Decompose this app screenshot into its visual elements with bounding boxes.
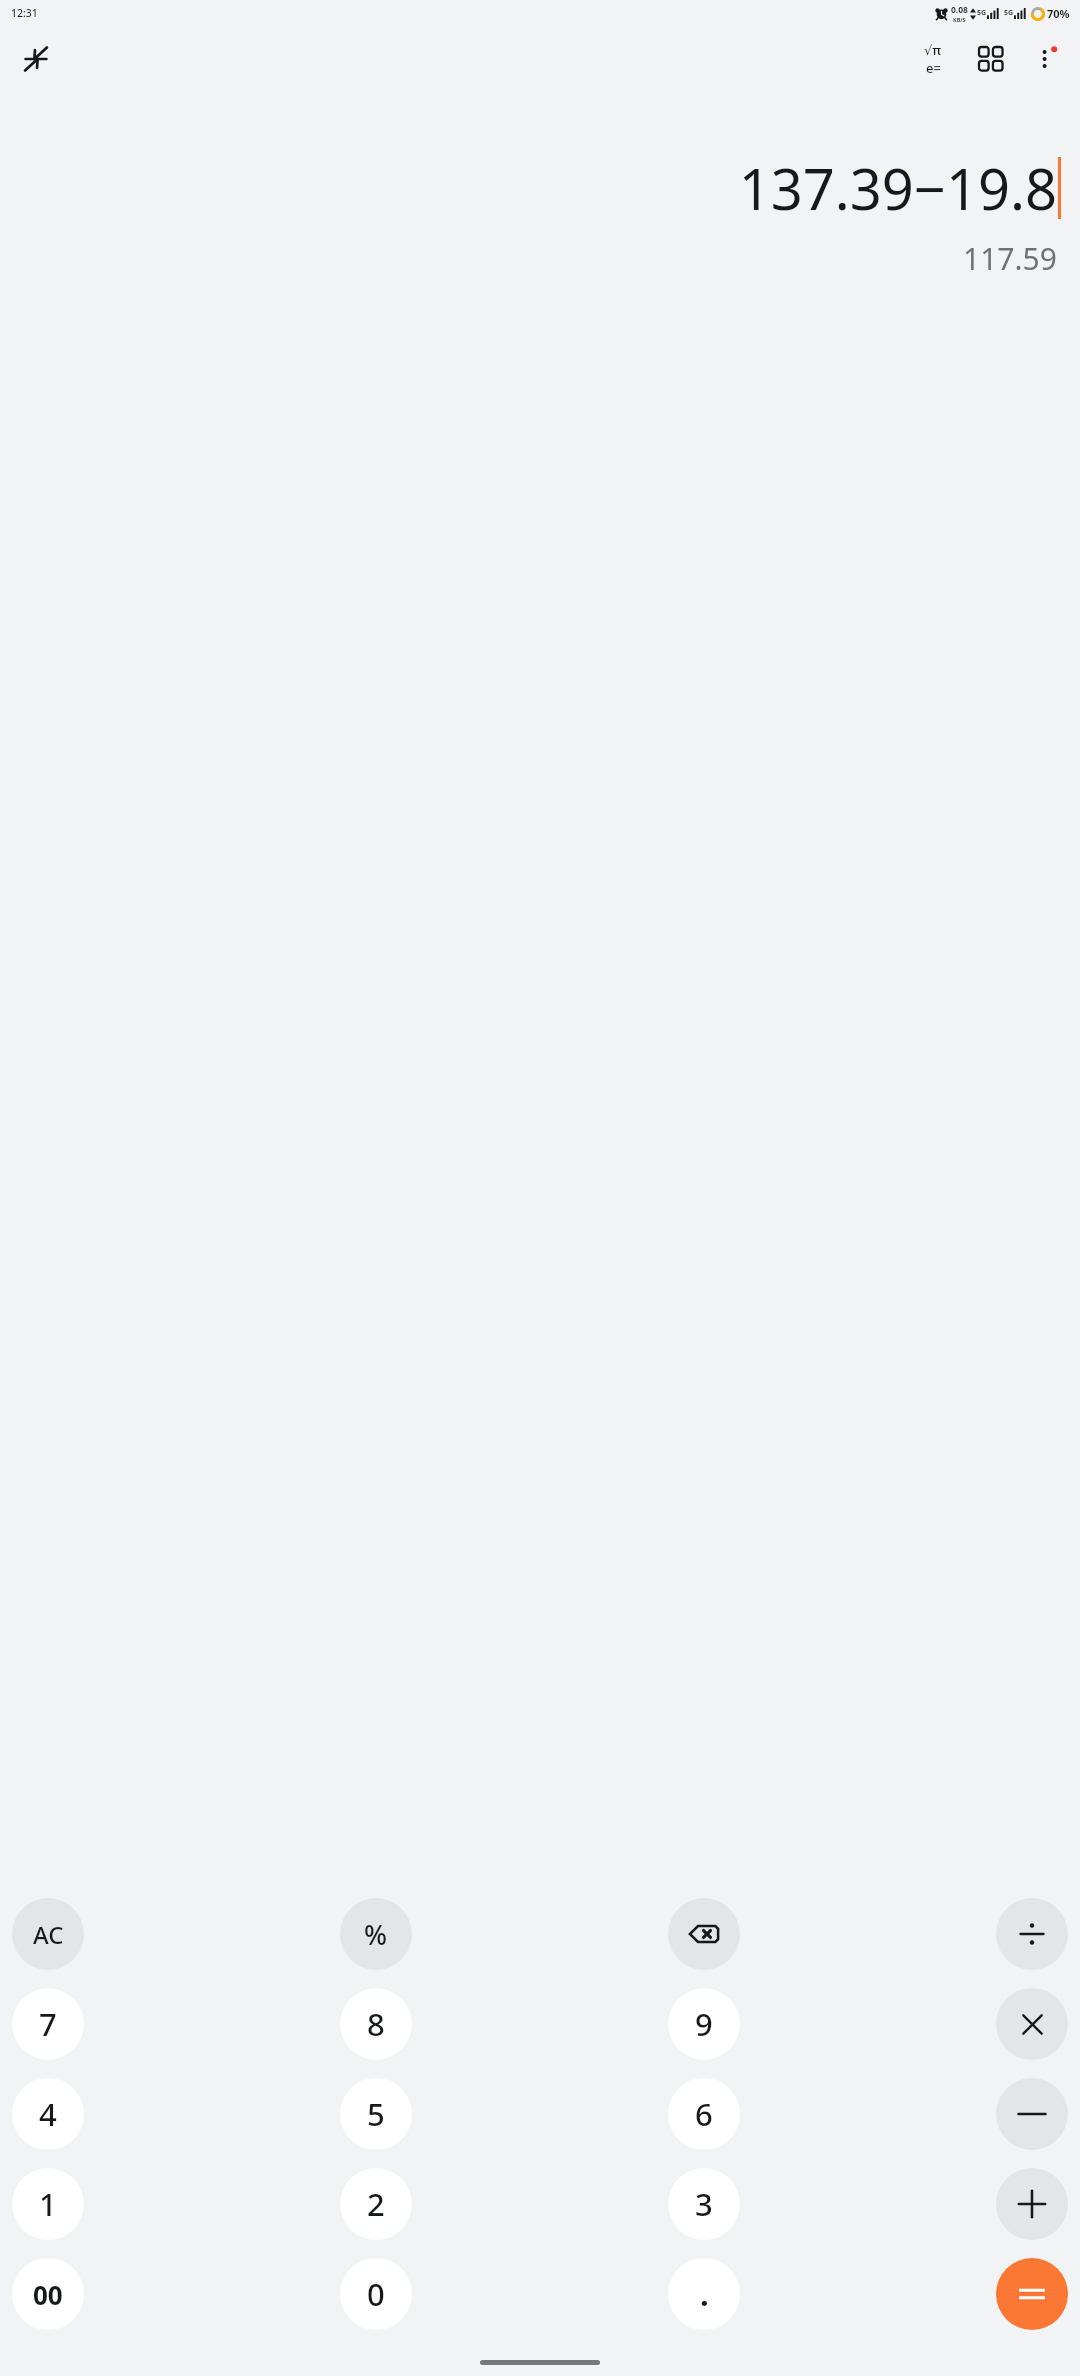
button[interactable]: Minus [996, 2078, 1068, 2150]
staticText: 2 [367, 2183, 385, 2225]
button[interactable]: 5 [340, 2078, 412, 2150]
button[interactable]: Multiply [996, 1988, 1068, 2060]
staticText: 7 [39, 2003, 57, 2045]
button[interactable]: 3 [668, 2168, 740, 2240]
button[interactable]: AC [12, 1898, 84, 1970]
staticText: % [364, 1916, 388, 1953]
staticText: 4 [39, 2093, 57, 2135]
staticText: e= [926, 59, 941, 77]
staticText: 0.08 [951, 4, 968, 16]
button[interactable]: Divide [996, 1898, 1068, 1970]
staticText: 9 [695, 2003, 713, 2045]
staticText: 5 [367, 2093, 385, 2135]
button[interactable]: 6 [668, 2078, 740, 2150]
button[interactable]: . [668, 2258, 740, 2330]
staticText: 70% [1047, 6, 1070, 21]
button[interactable]: 00 [12, 2258, 84, 2330]
button[interactable]: 9 [668, 1988, 740, 2060]
button[interactable]: 0 [340, 2258, 412, 2330]
staticText: AC [33, 1918, 64, 1951]
staticText: . [700, 2273, 709, 2315]
staticText: 00 [33, 2277, 63, 2312]
staticText: 6 [695, 2093, 713, 2135]
button[interactable]: 8 [340, 1988, 412, 2060]
button[interactable]: Apps [968, 36, 1014, 82]
button[interactable]: 7 [12, 1988, 84, 2060]
staticText: 12:31 [11, 6, 38, 20]
staticText: KB/S [953, 16, 966, 23]
button[interactable]: Scientific mode [910, 36, 956, 82]
staticText: 0 [367, 2273, 385, 2315]
button[interactable]: 4 [12, 2078, 84, 2150]
staticText: 117.59 [963, 238, 1057, 279]
staticText: 1 [39, 2183, 57, 2225]
button[interactable]: 2 [340, 2168, 412, 2240]
staticText: √π [924, 41, 942, 59]
button[interactable]: 1 [12, 2168, 84, 2240]
button[interactable]: % [340, 1898, 412, 1970]
staticText: 5G [1004, 8, 1014, 18]
staticText: 3 [695, 2183, 713, 2225]
staticText: 8 [367, 2003, 385, 2045]
button[interactable]: Plus [996, 2168, 1068, 2240]
button[interactable]: Equals [996, 2258, 1068, 2330]
staticText: 5G [977, 8, 987, 18]
button[interactable]: Backspace [668, 1898, 740, 1970]
button[interactable]: More options [1024, 36, 1070, 82]
button[interactable]: Collapse [14, 37, 58, 81]
staticText: 137.39−19.8 [738, 150, 1057, 226]
